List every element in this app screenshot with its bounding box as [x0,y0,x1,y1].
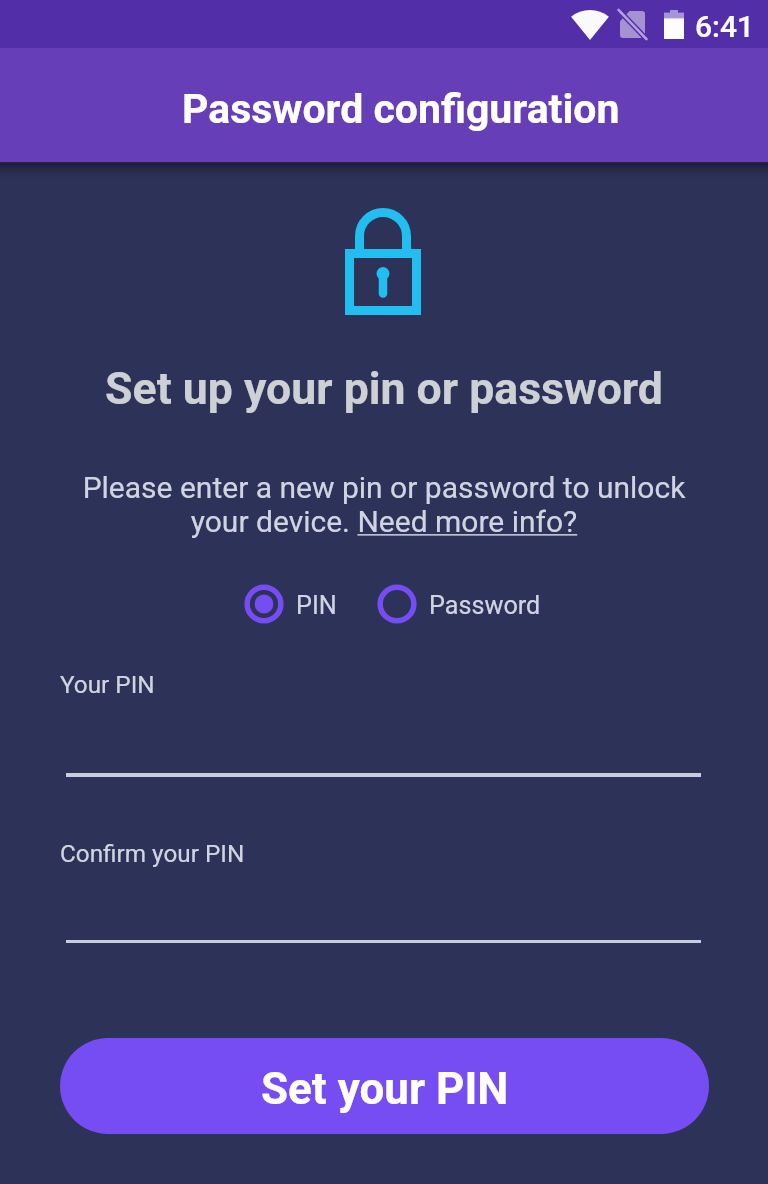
button[interactable]: Password [377,584,541,624]
staticText: Set your PIN [261,1063,509,1115]
button[interactable]: Confirm your PIN [60,831,701,948]
staticText: 6:41 [695,9,755,44]
staticText: Please enter a new pin or password to un… [74,470,694,540]
staticText: PIN [296,591,337,621]
button[interactable]: Need more info? [357,509,579,541]
button[interactable]: Your PIN [60,662,701,781]
staticText: Your PIN [60,670,155,698]
other: No SIM card [620,11,645,38]
staticText: Password [429,591,541,621]
button[interactable]: PIN [244,584,337,624]
button[interactable]: Set your PIN [60,1038,709,1134]
other: Battery [664,10,684,39]
staticText: Confirm your PIN [60,839,245,867]
other: Wifi signal [571,10,609,40]
staticText: Set up your pin or password [0,363,768,415]
staticText: Password configuration [182,85,620,133]
